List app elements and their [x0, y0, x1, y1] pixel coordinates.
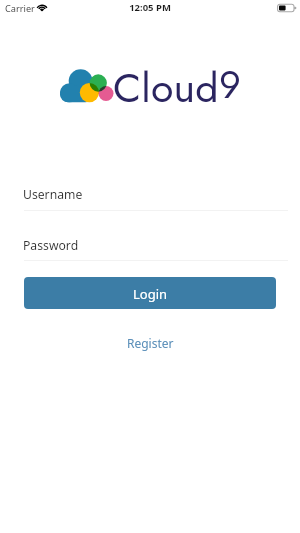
staticText: Username [23, 186, 83, 203]
staticText: Cloud [113, 58, 219, 117]
button[interactable]: Password [23, 237, 288, 262]
staticText: Login [133, 285, 168, 303]
staticText: Carrier [5, 2, 35, 15]
staticText: Password [23, 237, 79, 254]
staticText: Register [127, 335, 174, 351]
button[interactable]: Login [24, 277, 276, 309]
button[interactable]: Register [100, 333, 200, 353]
staticText: 12:05 PM [0, 1, 300, 14]
staticText: 9 [219, 57, 241, 112]
button[interactable]: Username [23, 186, 288, 211]
